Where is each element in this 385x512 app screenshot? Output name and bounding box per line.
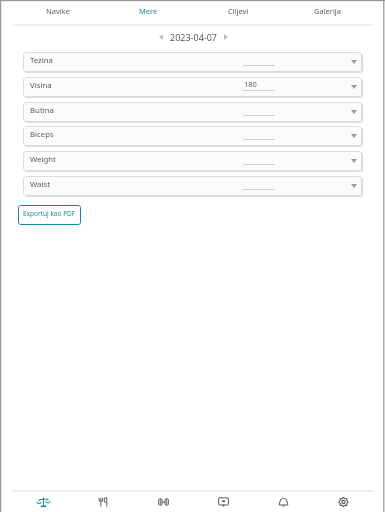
button[interactable]: Exportuj kao PDF [18,205,81,225]
staticText: 2023-04-07 [170,31,217,43]
staticText: Weight [30,154,56,165]
staticText: Tezina [30,55,53,66]
button[interactable]: Notifications [253,492,313,512]
button[interactable]: Settings [313,492,373,512]
button[interactable]: Navike [13,0,103,24]
staticText: 180 [244,79,257,89]
button[interactable]: Mere [103,0,193,24]
staticText: Mere [139,6,158,16]
staticText: Waist [30,179,51,190]
button[interactable]: Ciljevi [193,0,283,24]
staticText: Exportuj kao PDF [23,209,76,218]
button[interactable]: Waist [23,176,362,196]
staticText: Navike [46,6,70,16]
staticText: Ciljevi [228,6,249,16]
button[interactable]: Biceps [23,126,362,146]
button[interactable]: Messages [193,492,253,512]
button[interactable]: Previous day [155,31,167,43]
button[interactable]: Weight [13,492,73,512]
button[interactable]: Visina [23,77,362,97]
button[interactable]: Tezina [23,52,362,72]
button[interactable]: Weight [23,151,362,171]
button[interactable]: Butina [23,102,362,122]
button[interactable]: Galerija [283,0,373,24]
button[interactable]: Next day [220,31,232,43]
staticText: Butina [30,105,54,116]
button[interactable]: Nutrition [73,492,133,512]
staticText: Visina [30,80,52,91]
staticText: Biceps [30,129,54,140]
staticText: Galerija [314,6,342,16]
button[interactable]: Workouts [133,492,193,512]
